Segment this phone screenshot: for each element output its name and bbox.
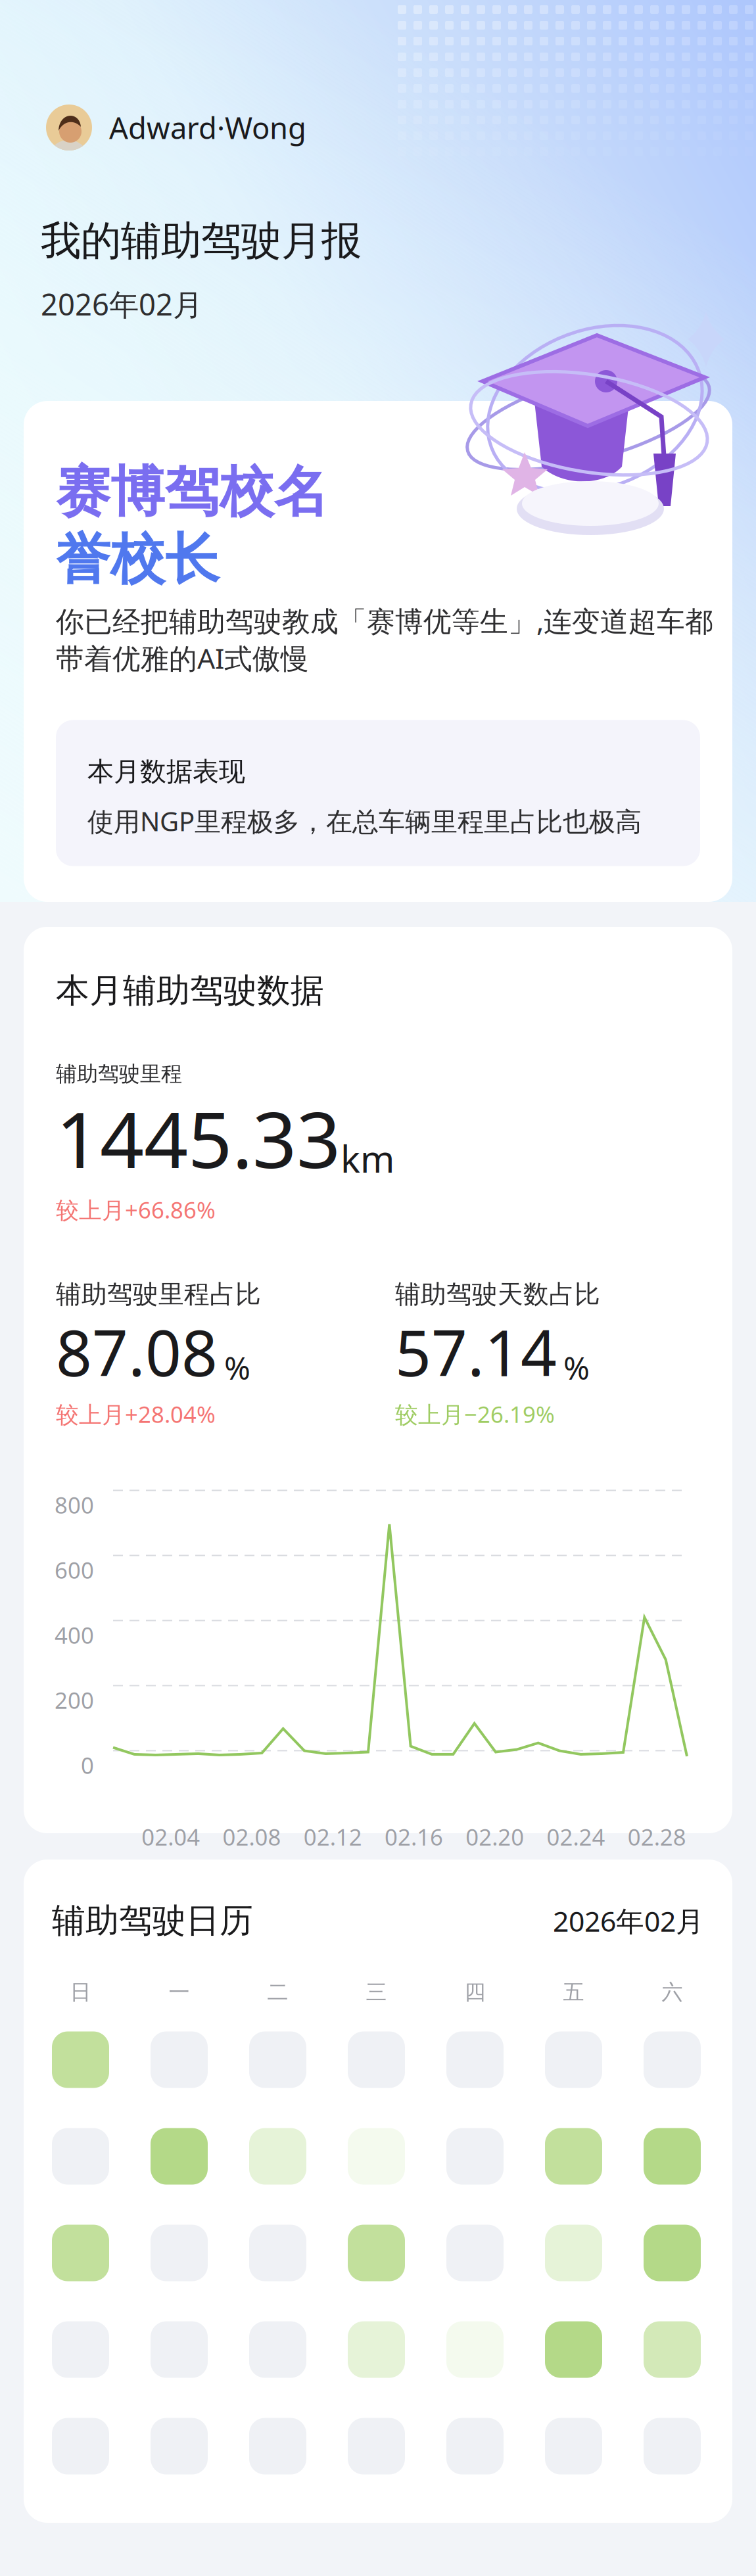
staticText: 2026年02月 [553, 1902, 704, 1939]
staticText: 使用NGP里程极多，在总车辆里程里占比也极高 [87, 804, 642, 838]
staticText: 六 [662, 1979, 683, 2005]
staticText: 本月辅助驾驶数据 [56, 970, 324, 1011]
staticText: % [224, 1347, 250, 1388]
staticText: % [563, 1347, 590, 1388]
staticText: 02.20 [466, 1822, 524, 1852]
staticText: 一 [169, 1979, 190, 2005]
staticText: 较上月+28.04% [56, 1399, 216, 1429]
staticText: 较上月−26.19% [395, 1399, 555, 1429]
button[interactable]: Adward·Wong [0, 102, 335, 153]
staticText: 辅助驾驶天数占比 [395, 1279, 600, 1310]
staticText: 辅助驾驶里程 [56, 1061, 182, 1087]
staticText: 辅助驾驶里程占比 [56, 1279, 261, 1310]
staticText: 2026年02月 [41, 284, 202, 324]
staticText: 200 [55, 1685, 94, 1715]
staticText: 辅助驾驶日历 [52, 1900, 253, 1941]
staticText: 本月数据表现 [87, 756, 245, 788]
staticText: 我的辅助驾驶月报 [41, 216, 362, 266]
staticText: 你已经把辅助驾驶教成「赛博优等生」,连变道超车都带着优雅的AI式傲慢 [56, 602, 713, 677]
staticText: 02.16 [385, 1822, 443, 1852]
staticText: 02.24 [547, 1822, 605, 1852]
staticText: 五 [563, 1979, 584, 2005]
staticText: 800 [55, 1490, 94, 1520]
staticText: 誉校长 [56, 526, 220, 593]
staticText: 87.08 [56, 1310, 218, 1394]
staticText: 0 [81, 1750, 94, 1780]
staticText: 57.14 [395, 1310, 557, 1394]
staticText: 二 [267, 1979, 288, 2005]
staticText: 三 [366, 1979, 387, 2005]
staticText: 02.28 [628, 1822, 686, 1852]
staticText: 赛博驾校名 [56, 459, 329, 526]
staticText: km [341, 1134, 394, 1183]
staticText: 02.08 [222, 1822, 281, 1852]
staticText: 400 [55, 1620, 94, 1650]
staticText: Adward·Wong [109, 108, 306, 147]
staticText: 日 [70, 1979, 91, 2005]
staticText: 02.12 [304, 1822, 362, 1852]
staticText: 02.04 [141, 1822, 200, 1852]
staticText: 较上月+66.86% [56, 1195, 216, 1225]
staticText: 四 [464, 1979, 485, 2005]
staticText: 1445.33 [56, 1087, 341, 1189]
staticText: 600 [55, 1555, 94, 1585]
